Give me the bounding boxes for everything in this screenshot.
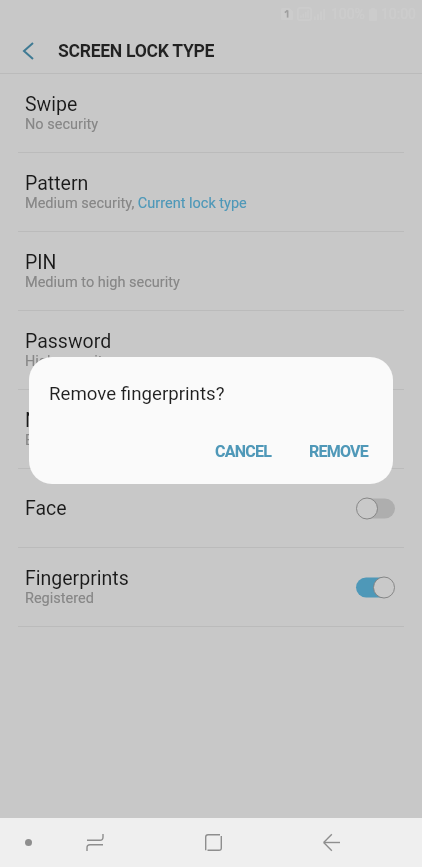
staticText: CANCEL [215,442,272,461]
button[interactable]: Home [189,818,237,867]
staticText: REMOVE [309,442,369,461]
button[interactable]: CANCEL [204,431,283,471]
staticText: Face [25,497,67,520]
staticText: Password [25,330,112,353]
button[interactable]: Navigate up [8,28,48,73]
button[interactable]: Face [0,469,422,547]
button[interactable]: Fingerprints [0,548,422,626]
staticText: Remove fingerprints? [49,383,225,405]
button[interactable]: PIN [0,232,422,310]
button[interactable]: Password [0,311,422,389]
staticText: Fingerprints [25,567,129,590]
button[interactable]: Turn on [356,497,395,520]
staticText: None [25,409,72,432]
button[interactable]: Menu [4,818,52,867]
button[interactable]: Turn off [356,576,395,599]
staticText: SCREEN LOCK TYPE [58,41,215,62]
staticText: High security [25,353,110,370]
staticText: Medium to high security [25,274,180,291]
staticText: Pattern [25,172,89,195]
staticText: Medium security, Current lock type [25,195,247,212]
button[interactable]: Pattern [0,153,422,231]
button[interactable]: REMOVE [299,431,379,471]
staticText: Registered [25,590,94,607]
staticText: PIN [25,251,57,274]
staticText: No security [25,116,99,133]
button[interactable]: None [0,390,422,468]
button[interactable]: Swipe [0,74,422,152]
button[interactable]: Back [307,818,355,867]
staticText: Extremely low security [25,432,170,449]
staticText: Swipe [25,93,78,116]
button[interactable]: Recents [71,818,119,867]
